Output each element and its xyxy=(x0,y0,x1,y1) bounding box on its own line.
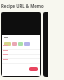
button[interactable] xyxy=(4,42,11,46)
button[interactable]: Add recipe xyxy=(29,67,38,71)
button[interactable] xyxy=(12,42,17,46)
staticText: Recipe URL & Memo xyxy=(1,3,44,9)
button[interactable] xyxy=(18,42,23,46)
button[interactable] xyxy=(24,42,30,46)
